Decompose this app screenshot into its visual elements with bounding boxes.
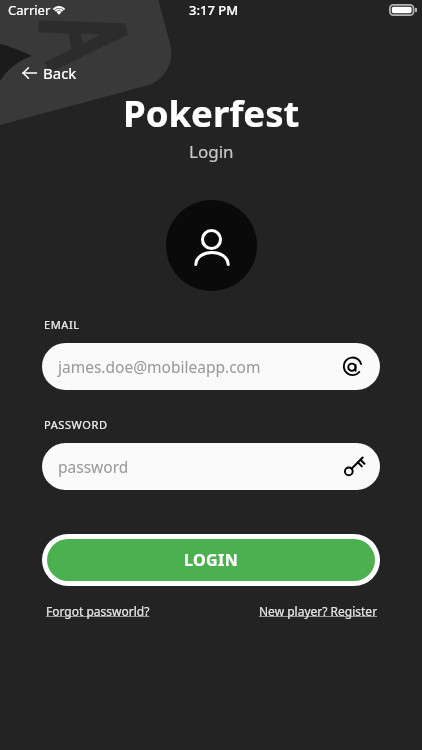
staticText: password	[58, 456, 342, 477]
staticText: PASSWORD	[44, 417, 108, 432]
staticText: LOGIN	[184, 549, 239, 571]
staticText: Carrier	[8, 1, 51, 19]
button[interactable]: password	[42, 443, 380, 490]
button[interactable]: Back	[16, 60, 83, 86]
other: Password	[342, 456, 364, 478]
button[interactable]: Profile avatar	[166, 200, 257, 291]
staticText: 3:17 PM	[189, 1, 239, 19]
button[interactable]: james.doe@mobileapp.com	[42, 343, 380, 390]
staticText: james.doe@mobileapp.com	[58, 356, 342, 377]
other: Email	[342, 356, 364, 378]
staticText: Pokerfest	[123, 88, 300, 138]
button[interactable]: LOGIN	[47, 539, 375, 581]
button[interactable]: Forgot passworld?	[46, 603, 150, 619]
staticText: Back	[43, 63, 77, 83]
staticText: EMAIL	[44, 317, 80, 332]
staticText: Login	[189, 140, 234, 163]
button[interactable]: New player? Register	[259, 603, 378, 619]
